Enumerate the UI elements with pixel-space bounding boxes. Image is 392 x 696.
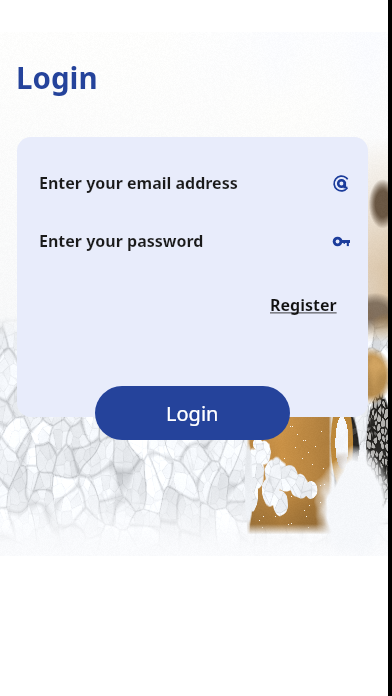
- button[interactable]: Enter your password: [17, 222, 368, 260]
- staticText: Enter your email address: [39, 172, 238, 194]
- button[interactable]: Register: [268, 292, 339, 318]
- button[interactable]: Enter your email address: [17, 164, 368, 202]
- button[interactable]: Login: [95, 386, 290, 440]
- staticText: Login: [16, 57, 98, 97]
- staticText: Login: [166, 400, 219, 427]
- staticText: Register: [270, 294, 337, 316]
- staticText: Enter your password: [39, 230, 204, 252]
